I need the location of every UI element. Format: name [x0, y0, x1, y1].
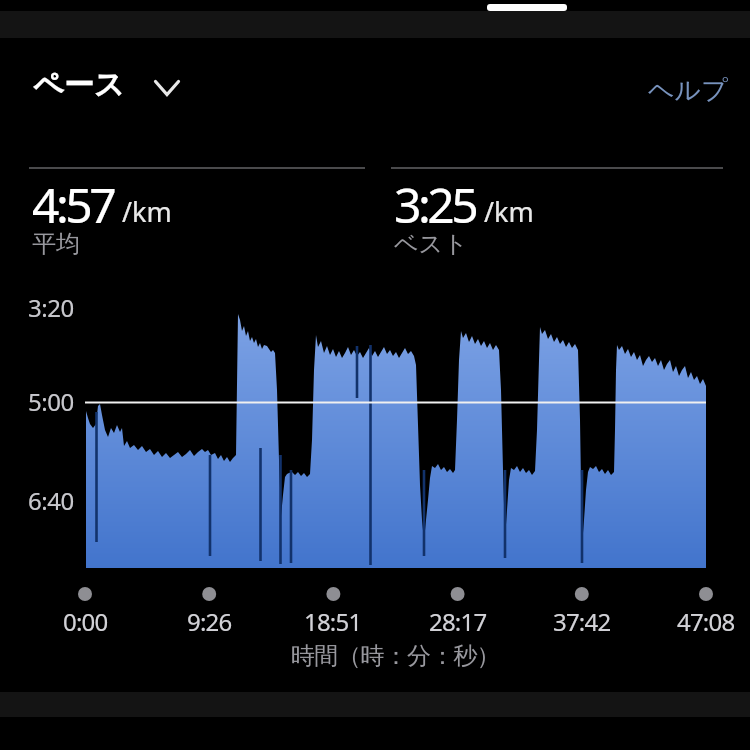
staticText: 37:42 — [553, 605, 611, 633]
staticText: ペース — [33, 66, 125, 104]
staticText: 47:08 — [677, 605, 735, 633]
button[interactable]: ヘルプ — [628, 66, 708, 99]
staticText: ベスト — [394, 229, 468, 259]
staticText: 時間（時：分：秒） — [291, 641, 500, 671]
staticText: 6:40 — [28, 484, 74, 516]
staticText: 3:20 — [28, 291, 74, 323]
staticText: 5:00 — [28, 385, 74, 417]
staticText: 3:25 — [394, 172, 476, 237]
staticText: 28:17 — [429, 605, 487, 633]
button[interactable]: ペース — [33, 66, 180, 104]
staticText: ヘルプ — [648, 74, 728, 107]
staticText: 平均 — [32, 229, 80, 259]
staticText: 0:00 — [63, 605, 108, 633]
staticText: 9:26 — [187, 605, 232, 633]
staticText: /km — [484, 193, 534, 230]
staticText: /km — [122, 193, 172, 230]
staticText: 18:51 — [304, 605, 362, 633]
staticText: 4:57 — [32, 172, 114, 237]
